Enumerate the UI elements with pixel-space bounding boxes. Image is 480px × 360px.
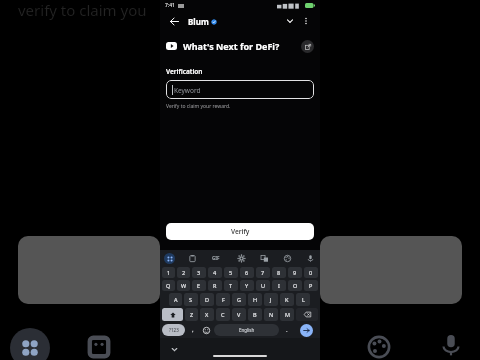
staticText: 5 (229, 269, 233, 276)
button[interactable]: N (264, 308, 278, 321)
button[interactable]: 4 (208, 267, 222, 278)
staticText: D (205, 296, 210, 303)
staticText: Verify (231, 227, 250, 236)
staticText: 8 (277, 269, 281, 276)
staticText: A (174, 296, 178, 303)
staticText: Keyword (174, 86, 201, 95)
button[interactable]: V (232, 308, 246, 321)
staticText: O (293, 282, 298, 289)
staticText: 4 (213, 269, 217, 276)
button[interactable]: Period (280, 322, 293, 338)
button[interactable]: Keyboard apps (164, 253, 175, 264)
button[interactable]: Voice input (304, 252, 316, 264)
button[interactable]: G (232, 293, 246, 306)
button[interactable]: C (216, 308, 230, 321)
button[interactable]: X (200, 308, 214, 321)
staticText: K (285, 296, 289, 303)
button[interactable]: 8 (272, 267, 286, 278)
button[interactable]: 2 (177, 267, 190, 278)
button[interactable]: E (192, 280, 206, 291)
button[interactable]: U (256, 280, 270, 291)
button[interactable]: Verify (166, 223, 314, 240)
staticText: G (237, 296, 242, 303)
button[interactable]: Shift (162, 308, 183, 321)
staticText: 1 (167, 269, 171, 276)
button[interactable]: Enter (300, 324, 313, 337)
button[interactable]: S (184, 293, 198, 306)
staticText: English (239, 327, 255, 333)
button[interactable]: W (177, 280, 190, 291)
button[interactable]: I (272, 280, 286, 291)
button[interactable]: Comma (186, 322, 199, 338)
button[interactable]: F (216, 293, 230, 306)
button[interactable]: Z (185, 308, 198, 321)
button[interactable]: 1 (162, 267, 175, 278)
button[interactable]: Translate (258, 252, 270, 264)
staticText: E (197, 282, 201, 289)
button[interactable]: P (304, 280, 318, 291)
button[interactable]: Q (162, 280, 175, 291)
button[interactable]: Settings (235, 252, 247, 264)
button[interactable]: 0 (304, 267, 318, 278)
button[interactable]: Blum (188, 16, 217, 27)
button[interactable]: Open in new window (301, 40, 314, 53)
button[interactable]: D (200, 293, 214, 306)
staticText: U (261, 282, 266, 289)
button[interactable]: Hide keyboard (168, 343, 180, 355)
staticText: , (192, 326, 194, 334)
button[interactable]: B (248, 308, 262, 321)
button[interactable]: 3 (192, 267, 206, 278)
button[interactable]: 9 (288, 267, 302, 278)
button[interactable]: R (208, 280, 222, 291)
staticText: Verify to claim your reward. (166, 103, 231, 110)
button[interactable]: L (296, 293, 310, 306)
button[interactable]: 5 (224, 267, 238, 278)
button[interactable]: Themes (281, 252, 293, 264)
staticText: W (181, 282, 187, 289)
button[interactable]: English (214, 324, 279, 336)
staticText: Q (166, 282, 171, 289)
button[interactable]: A (169, 293, 182, 306)
button[interactable]: Back (166, 13, 182, 29)
button[interactable]: K (280, 293, 294, 306)
button[interactable]: 6 (240, 267, 254, 278)
button[interactable]: O (288, 280, 302, 291)
button[interactable]: Expand (282, 13, 298, 29)
staticText: Y (245, 282, 249, 289)
staticText: 7:41 (165, 2, 175, 9)
staticText: What's Next for DeFi? (183, 40, 280, 52)
staticText: I (278, 282, 280, 289)
staticText: 0 (309, 269, 313, 276)
button[interactable]: Clipboard (186, 252, 198, 264)
button[interactable]: Y (240, 280, 254, 291)
staticText: L (302, 296, 305, 303)
button[interactable]: M (280, 308, 294, 321)
staticText: S (189, 296, 193, 303)
staticText: 3 (197, 269, 201, 276)
button[interactable]: GIF (209, 252, 223, 264)
button[interactable]: Keyword (166, 80, 314, 99)
button[interactable]: T (224, 280, 238, 291)
staticText: R (213, 282, 217, 289)
staticText: verify to claim you (18, 0, 147, 20)
staticText: F (222, 296, 225, 303)
button[interactable]: Emoji (199, 322, 213, 338)
staticText: T (229, 282, 233, 289)
staticText: H (253, 296, 258, 303)
staticText: V (237, 311, 241, 318)
button[interactable]: J (264, 293, 278, 306)
staticText: 2 (182, 269, 186, 276)
button[interactable]: H (248, 293, 262, 306)
staticText: M (285, 311, 290, 318)
staticText: B (253, 311, 257, 318)
staticText: 7 (261, 269, 265, 276)
staticText: Z (190, 311, 194, 318)
button[interactable]: What's Next for DeFi? (166, 35, 314, 57)
button[interactable]: Backspace (296, 308, 318, 321)
staticText: P (309, 282, 313, 289)
button[interactable]: 7 (256, 267, 270, 278)
button[interactable]: ?123 (162, 324, 185, 336)
staticText: ?123 (169, 327, 179, 333)
button[interactable]: More options (298, 13, 314, 29)
staticText: GIF (212, 255, 220, 261)
